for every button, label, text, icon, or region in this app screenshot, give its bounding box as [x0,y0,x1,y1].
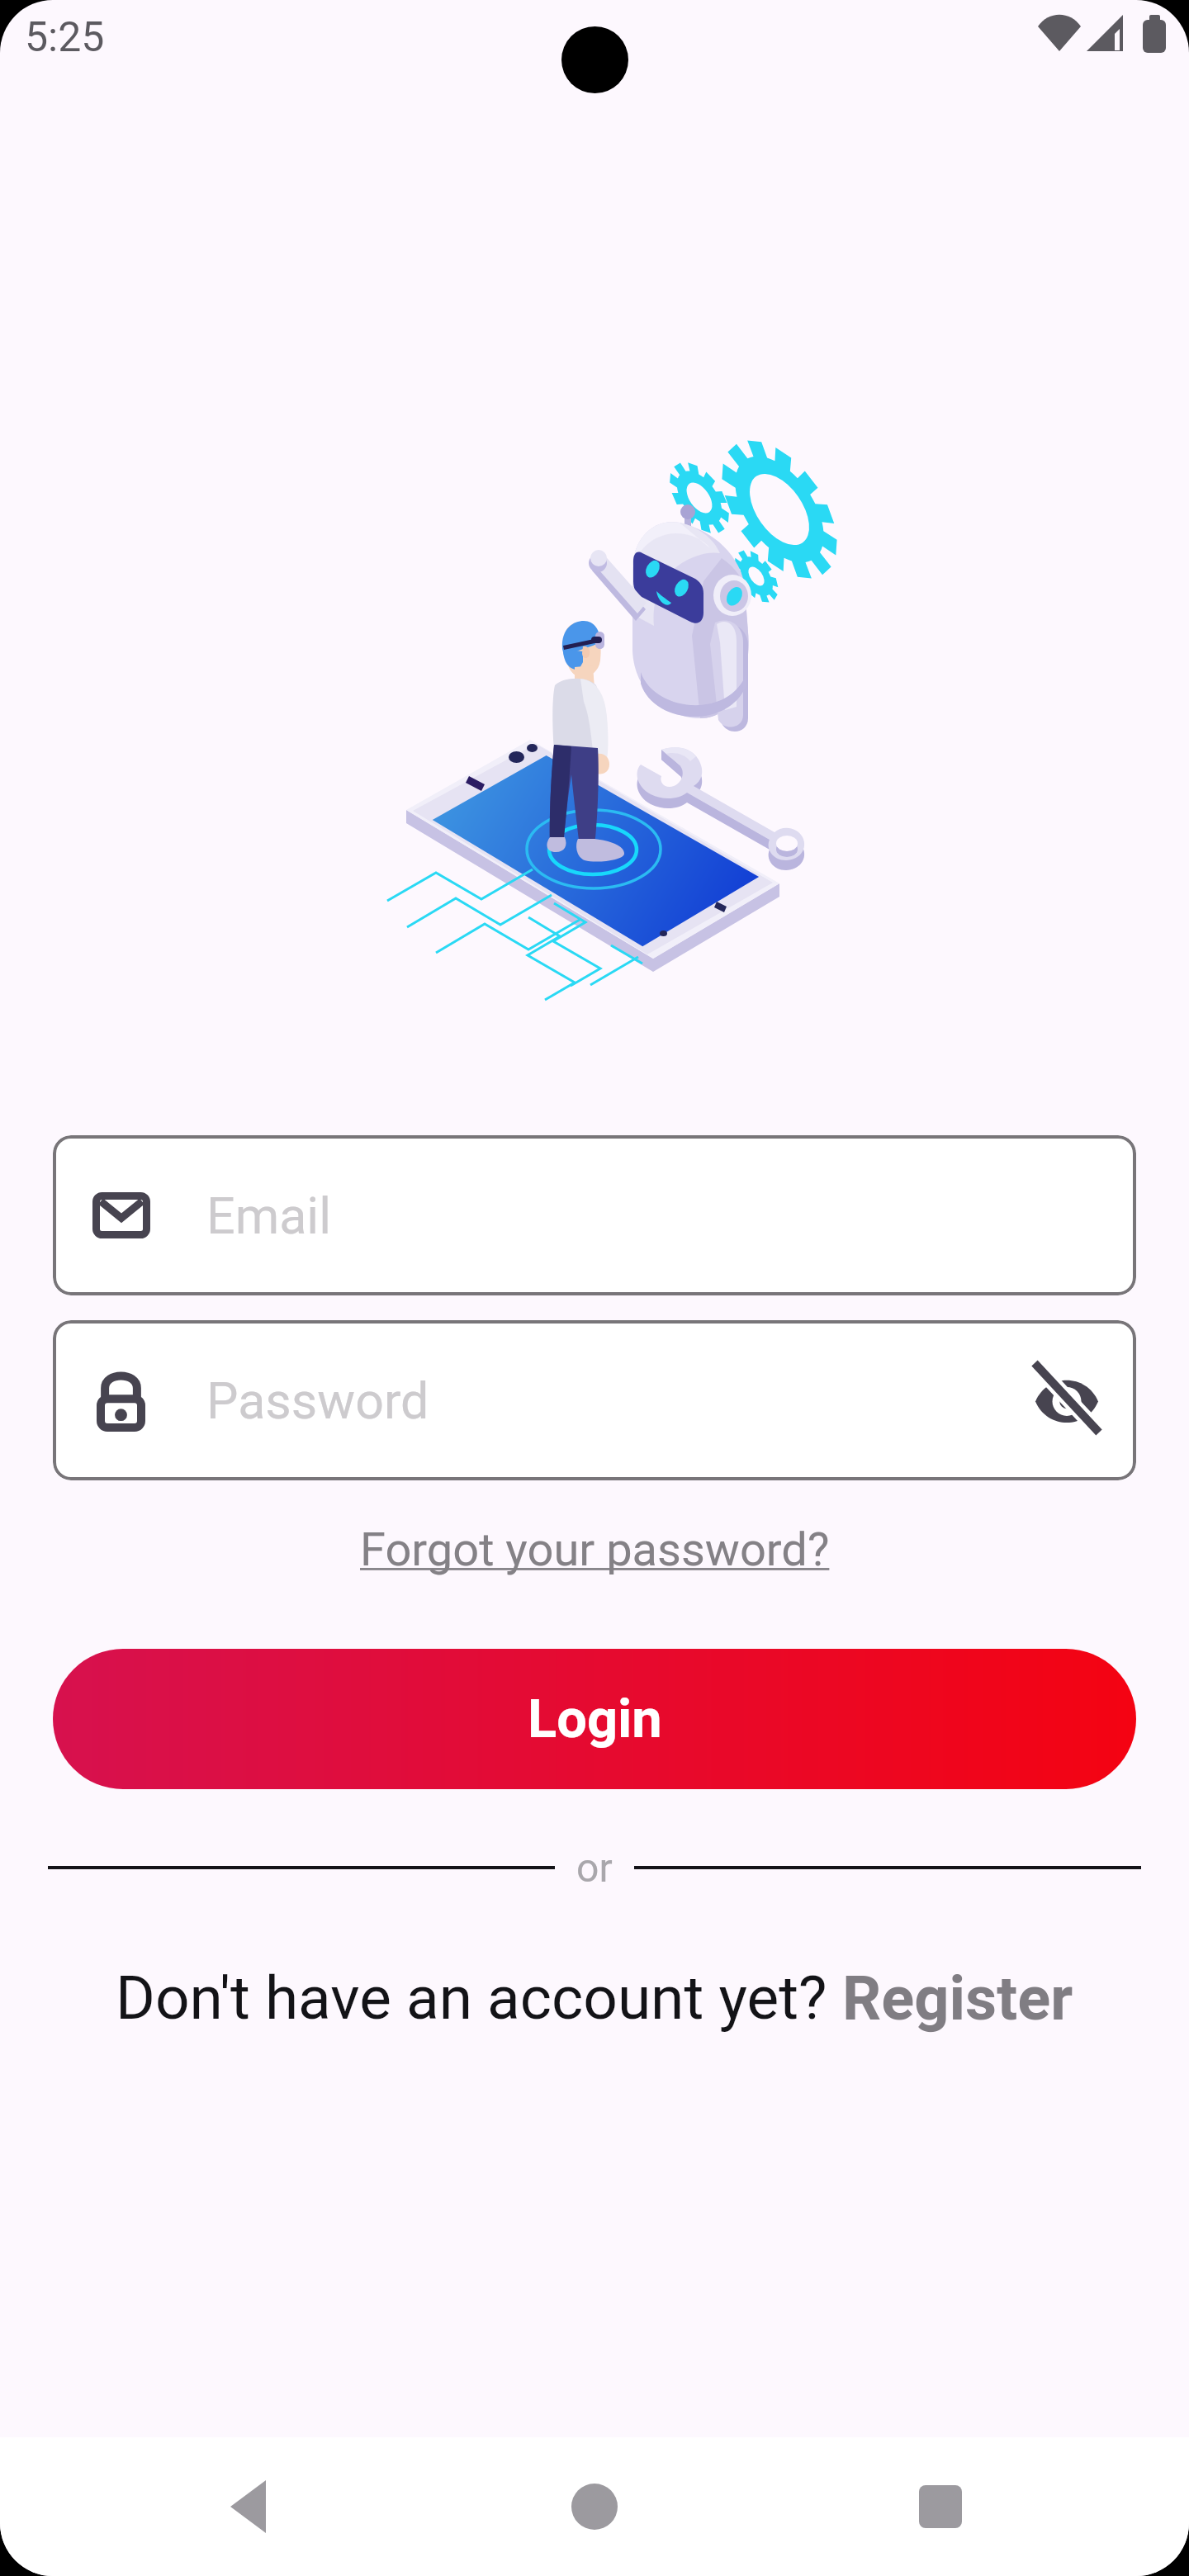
button[interactable]: Login [53,1649,1136,1789]
button[interactable]: Email [53,1135,1136,1295]
button[interactable]: Forgot your password? [352,1518,838,1582]
button[interactable]: Recents [867,2437,1016,2576]
staticText: 5:25 [25,13,105,62]
staticText: Email [206,1186,332,1245]
button[interactable]: Password [53,1320,1136,1480]
button[interactable]: Register [842,1963,1073,2034]
button[interactable]: Home [520,2437,669,2576]
staticText: Login [528,1688,662,1750]
staticText: Register [842,1963,1073,2034]
staticText: Don't have an account yet? [116,1963,842,2034]
button[interactable]: Show password [1005,1334,1129,1466]
staticText: Forgot your password? [360,1522,830,1577]
staticText: Password [206,1371,429,1430]
staticText: or [576,1844,613,1891]
button[interactable]: Back [190,2437,339,2576]
